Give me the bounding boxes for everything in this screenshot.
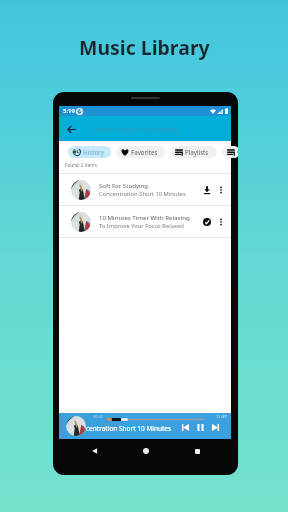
staticText: Music Library — [79, 34, 210, 61]
staticText: 5:19 — [63, 107, 75, 115]
button[interactable]: 10 Minutes Timer With Relaxing — [59, 206, 231, 237]
button[interactable]: Download — [200, 183, 213, 196]
staticText: Search Musics on History — [92, 124, 179, 134]
button[interactable]: History — [68, 146, 111, 158]
button[interactable]: Home — [138, 443, 154, 459]
button[interactable]: Playlists — [170, 146, 217, 158]
staticText: Albums — [237, 146, 238, 158]
button[interactable]: Previous — [182, 424, 189, 431]
staticText: 00:45 — [93, 414, 104, 419]
staticText: Concentration Short 10 Minutes — [99, 190, 186, 198]
button[interactable]: Next — [212, 424, 219, 431]
staticText: History — [83, 148, 104, 156]
button[interactable]: Favorites — [116, 146, 165, 158]
button[interactable]: Back — [63, 121, 79, 137]
button[interactable]: More options — [215, 184, 227, 196]
staticText: Found: 2 items — [65, 162, 97, 168]
staticText: Favorites — [131, 148, 158, 156]
button[interactable]: More options — [215, 216, 227, 228]
staticText: To Improve Your Focus Relaxed — [99, 222, 184, 230]
button[interactable]: Back — [87, 443, 103, 459]
staticText: Playlists — [185, 148, 209, 156]
staticText: centration Short 10 Minutes — [86, 424, 172, 433]
button[interactable]: Soft For Studying — [59, 174, 231, 205]
button[interactable]: Albums — [222, 146, 238, 158]
staticText: 10 Minutes Timer With Relaxing — [99, 213, 190, 221]
button[interactable]: Pause — [197, 424, 204, 431]
button[interactable]: 00:45 — [59, 413, 231, 439]
staticText: 11:37 — [216, 414, 227, 420]
button[interactable]: Recent apps — [189, 443, 205, 459]
button[interactable]: Downloaded — [200, 215, 213, 228]
staticText: Soft For Studying — [99, 181, 149, 189]
